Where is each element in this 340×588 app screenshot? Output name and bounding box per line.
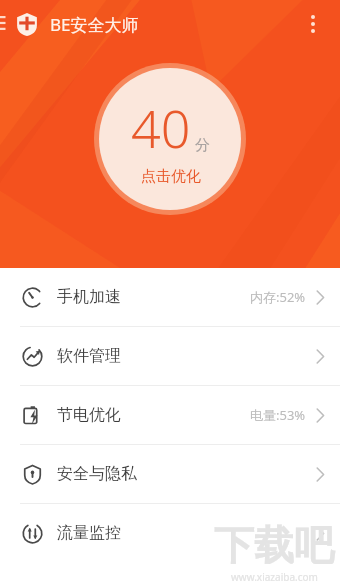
staticText: 流量监控	[57, 523, 121, 543]
staticText: 40	[131, 92, 191, 163]
staticText: 电量:53%	[250, 406, 306, 424]
staticText: 下载吧	[214, 520, 334, 570]
button[interactable]: More options	[296, 7, 330, 41]
button[interactable]: 流量监控	[0, 504, 340, 562]
other: Menu	[0, 14, 10, 34]
staticText: BE安全大师	[50, 13, 139, 36]
staticText: 节电优化	[57, 405, 121, 425]
staticText: 手机加速	[57, 287, 121, 307]
button[interactable]: 安全与隐私	[0, 445, 340, 503]
staticText: www.xiazaiba.com	[231, 570, 318, 584]
button[interactable]: 手机加速	[0, 268, 340, 326]
staticText: 内存:52%	[250, 288, 306, 306]
staticText: 软件管理	[57, 346, 121, 366]
button[interactable]: 软件管理	[0, 327, 340, 385]
button[interactable]: Optimize score	[94, 63, 246, 215]
staticText: 安全与隐私	[57, 464, 137, 484]
button[interactable]: 节电优化	[0, 386, 340, 444]
button[interactable]: App icon	[14, 11, 40, 37]
staticText: 点击优化	[141, 167, 201, 186]
staticText: 分	[195, 136, 210, 155]
